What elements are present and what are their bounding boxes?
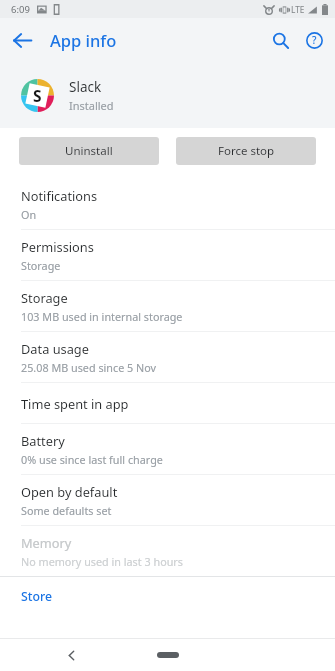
staticText: Notifications — [21, 187, 98, 204]
button[interactable]: Notifications — [0, 179, 335, 229]
staticText: 103 MB used in internal storage — [21, 309, 183, 324]
button[interactable]: Permissions — [0, 230, 335, 280]
staticText: Time spent in app — [21, 395, 129, 412]
button[interactable]: Time spent in app — [0, 383, 335, 423]
staticText: ? — [312, 33, 317, 47]
button[interactable]: Help — [297, 23, 331, 57]
staticText: 25.08 MB used since 5 Nov — [21, 360, 157, 375]
staticText: Open by default — [21, 483, 118, 500]
staticText: 0% use since last full charge — [21, 452, 163, 467]
staticText: 6:09 — [11, 3, 30, 16]
button[interactable]: Open by default — [0, 475, 335, 525]
button[interactable]: Home — [140, 643, 196, 667]
staticText: Some defaults set — [21, 503, 112, 518]
button[interactable]: Back — [5, 23, 39, 57]
button[interactable]: Memory — [0, 526, 335, 576]
staticText: Battery — [21, 432, 65, 449]
staticText: Force stop — [218, 143, 275, 159]
button[interactable]: Storage — [0, 281, 335, 331]
staticText: App info — [50, 29, 117, 51]
button[interactable]: Back — [56, 640, 86, 670]
button[interactable]: Battery — [0, 424, 335, 474]
staticText: No memory used in last 3 hours — [21, 554, 183, 569]
staticText: LTE — [291, 4, 305, 15]
button[interactable]: Search — [263, 23, 297, 57]
staticText: Uninstall — [65, 143, 113, 159]
staticText: Installed — [69, 98, 114, 113]
staticText: Slack — [69, 78, 102, 96]
staticText: On — [21, 207, 37, 222]
button[interactable]: Store — [0, 577, 335, 615]
staticText: Data usage — [21, 340, 89, 357]
staticText: Storage — [21, 258, 61, 273]
staticText: Permissions — [21, 238, 94, 255]
staticText: Store — [21, 588, 53, 605]
button[interactable]: Force stop — [176, 137, 316, 165]
staticText: S — [33, 85, 42, 106]
button[interactable]: Uninstall — [19, 137, 159, 165]
button[interactable]: Data usage — [0, 332, 335, 382]
staticText: Memory — [21, 534, 72, 551]
staticText: Storage — [21, 289, 68, 306]
